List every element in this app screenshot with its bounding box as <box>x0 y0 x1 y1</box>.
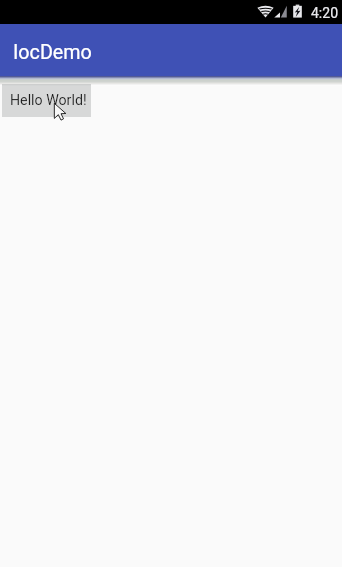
button[interactable]: Hello World! <box>2 84 91 117</box>
staticText: 4:20 <box>311 5 338 21</box>
staticText: Hello World! <box>10 92 87 109</box>
staticText: IocDemo <box>13 41 92 64</box>
